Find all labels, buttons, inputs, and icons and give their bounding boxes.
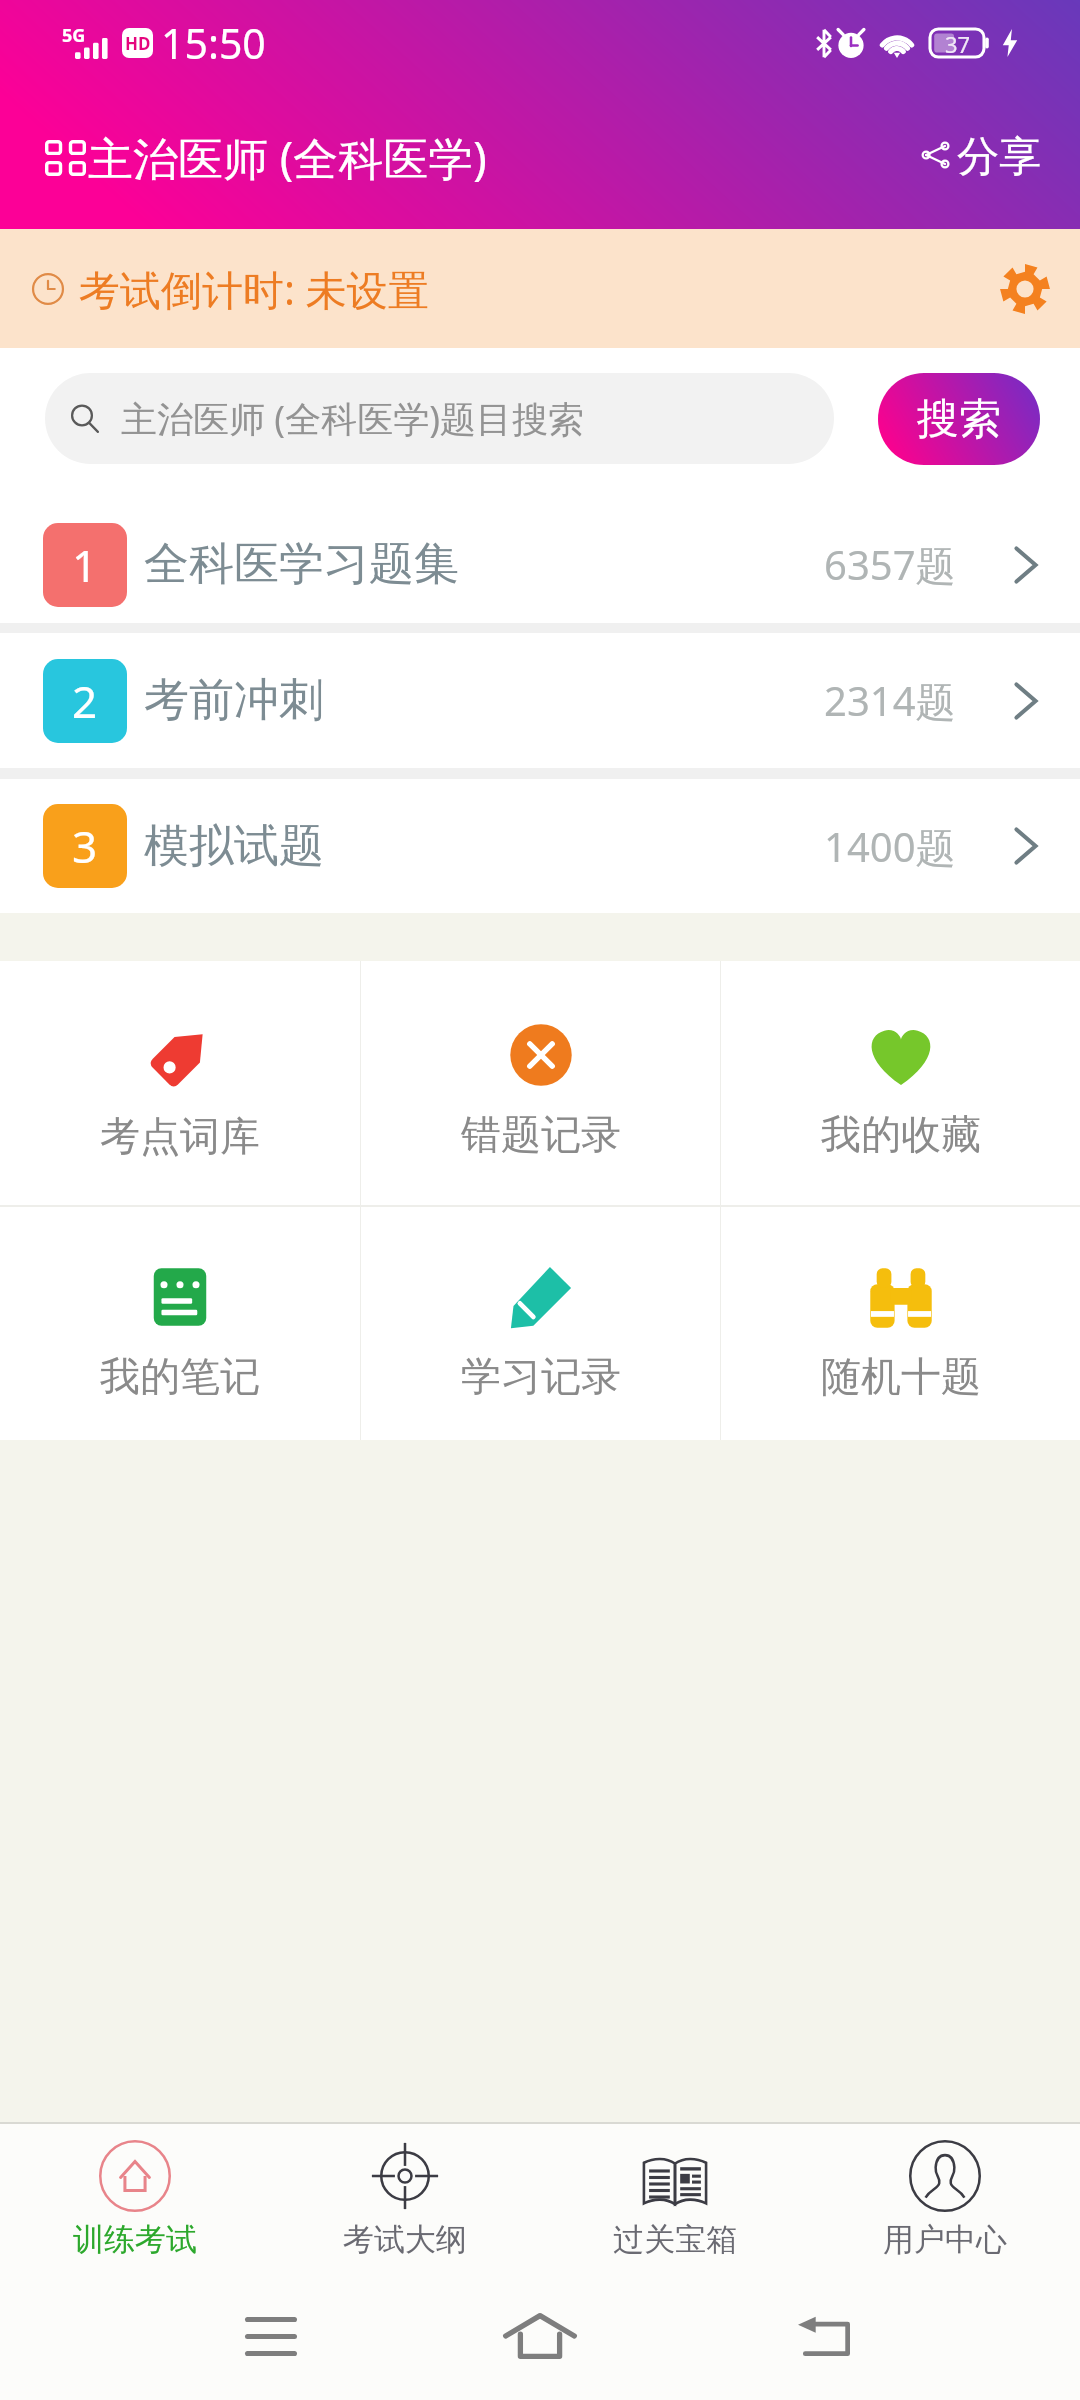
staticText: 37	[945, 29, 971, 57]
button[interactable]: 训练考试	[0, 2124, 270, 2280]
staticText: 考前冲刺	[144, 672, 324, 729]
staticText: 考试大纲	[343, 2220, 467, 2259]
staticText: 2314题	[824, 673, 956, 728]
staticText: 全科医学习题集	[144, 536, 459, 593]
button[interactable]: 学习记录	[361, 1207, 720, 1440]
staticText: 考点词库	[100, 1111, 260, 1161]
button[interactable]: Recents	[245, 2317, 297, 2356]
staticText: 1400题	[824, 819, 956, 874]
staticText: 用户中心	[883, 2220, 1007, 2259]
staticText: 过关宝箱	[613, 2220, 737, 2259]
button[interactable]: Home	[503, 2313, 577, 2359]
button[interactable]: 过关宝箱	[540, 2124, 810, 2280]
staticText: 模拟试题	[144, 818, 324, 875]
staticText: 错题记录	[461, 1109, 621, 1159]
staticText: 主治医师 (全科医学)题目搜索	[121, 394, 584, 443]
button[interactable]: 随机十题	[721, 1207, 1080, 1440]
button[interactable]: 考试大纲	[270, 2124, 540, 2280]
staticText: 1	[72, 535, 98, 595]
staticText: 学习记录	[461, 1351, 621, 1401]
staticText: 搜索	[917, 393, 1001, 446]
button[interactable]: 用户中心	[810, 2124, 1080, 2280]
button[interactable]: 考点词库	[0, 961, 360, 1205]
staticText: HD	[125, 32, 151, 55]
button[interactable]: 我的笔记	[0, 1207, 360, 1440]
staticText: 训练考试	[73, 2220, 197, 2259]
button[interactable]: 错题记录	[361, 961, 720, 1205]
button[interactable]: Settings	[999, 263, 1051, 315]
staticText: 我的笔记	[100, 1351, 260, 1401]
staticText: 我的收藏	[821, 1109, 981, 1159]
button[interactable]: 3	[0, 779, 1080, 913]
button[interactable]: 搜索	[878, 373, 1040, 465]
staticText: 5G	[62, 23, 86, 48]
staticText: 主治医师 (全科医学)	[88, 127, 487, 188]
button[interactable]: 主治医师 (全科医学)题目搜索	[45, 373, 834, 464]
staticText: 随机十题	[821, 1351, 981, 1401]
button[interactable]: 1	[0, 506, 1080, 623]
staticText: 3	[72, 816, 98, 876]
button[interactable]: Back	[798, 2315, 850, 2356]
staticText: 6357题	[824, 537, 956, 592]
staticText: 15:50	[161, 15, 266, 71]
button[interactable]: 我的收藏	[721, 961, 1080, 1205]
staticText: 分享	[957, 131, 1041, 184]
staticText: 2	[72, 671, 98, 731]
button[interactable]: 考试倒计时: 未设置	[0, 229, 1080, 348]
button[interactable]: 分享	[921, 131, 1041, 184]
staticText: 考试倒计时: 未设置	[79, 261, 429, 317]
button[interactable]: 2	[0, 633, 1080, 768]
